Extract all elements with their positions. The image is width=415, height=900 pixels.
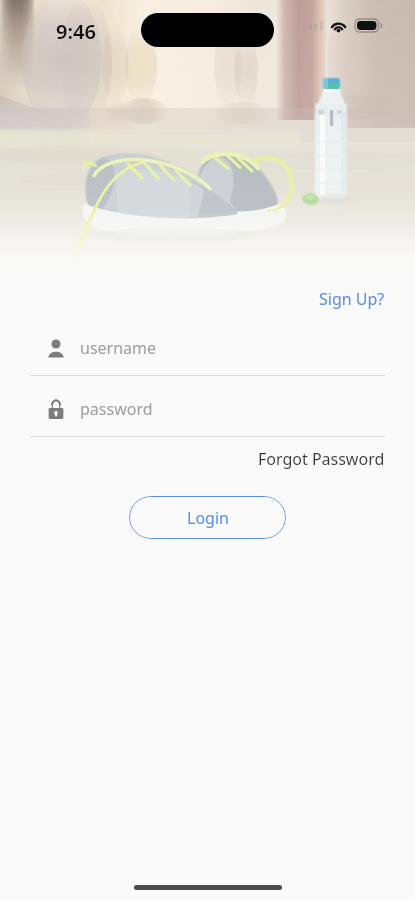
button[interactable]: Login (129, 496, 286, 539)
other: Password (48, 400, 64, 419)
staticText: 9:46 (56, 18, 96, 45)
staticText: password (80, 398, 153, 420)
staticText: Sign Up? (319, 288, 385, 310)
staticText: Forgot Password (258, 448, 385, 470)
staticText: Login (187, 507, 229, 529)
staticText: username (80, 337, 157, 359)
button[interactable]: Forgot Password (228, 442, 415, 476)
other: Username (48, 339, 64, 358)
button[interactable]: Sign Up? (289, 282, 415, 316)
